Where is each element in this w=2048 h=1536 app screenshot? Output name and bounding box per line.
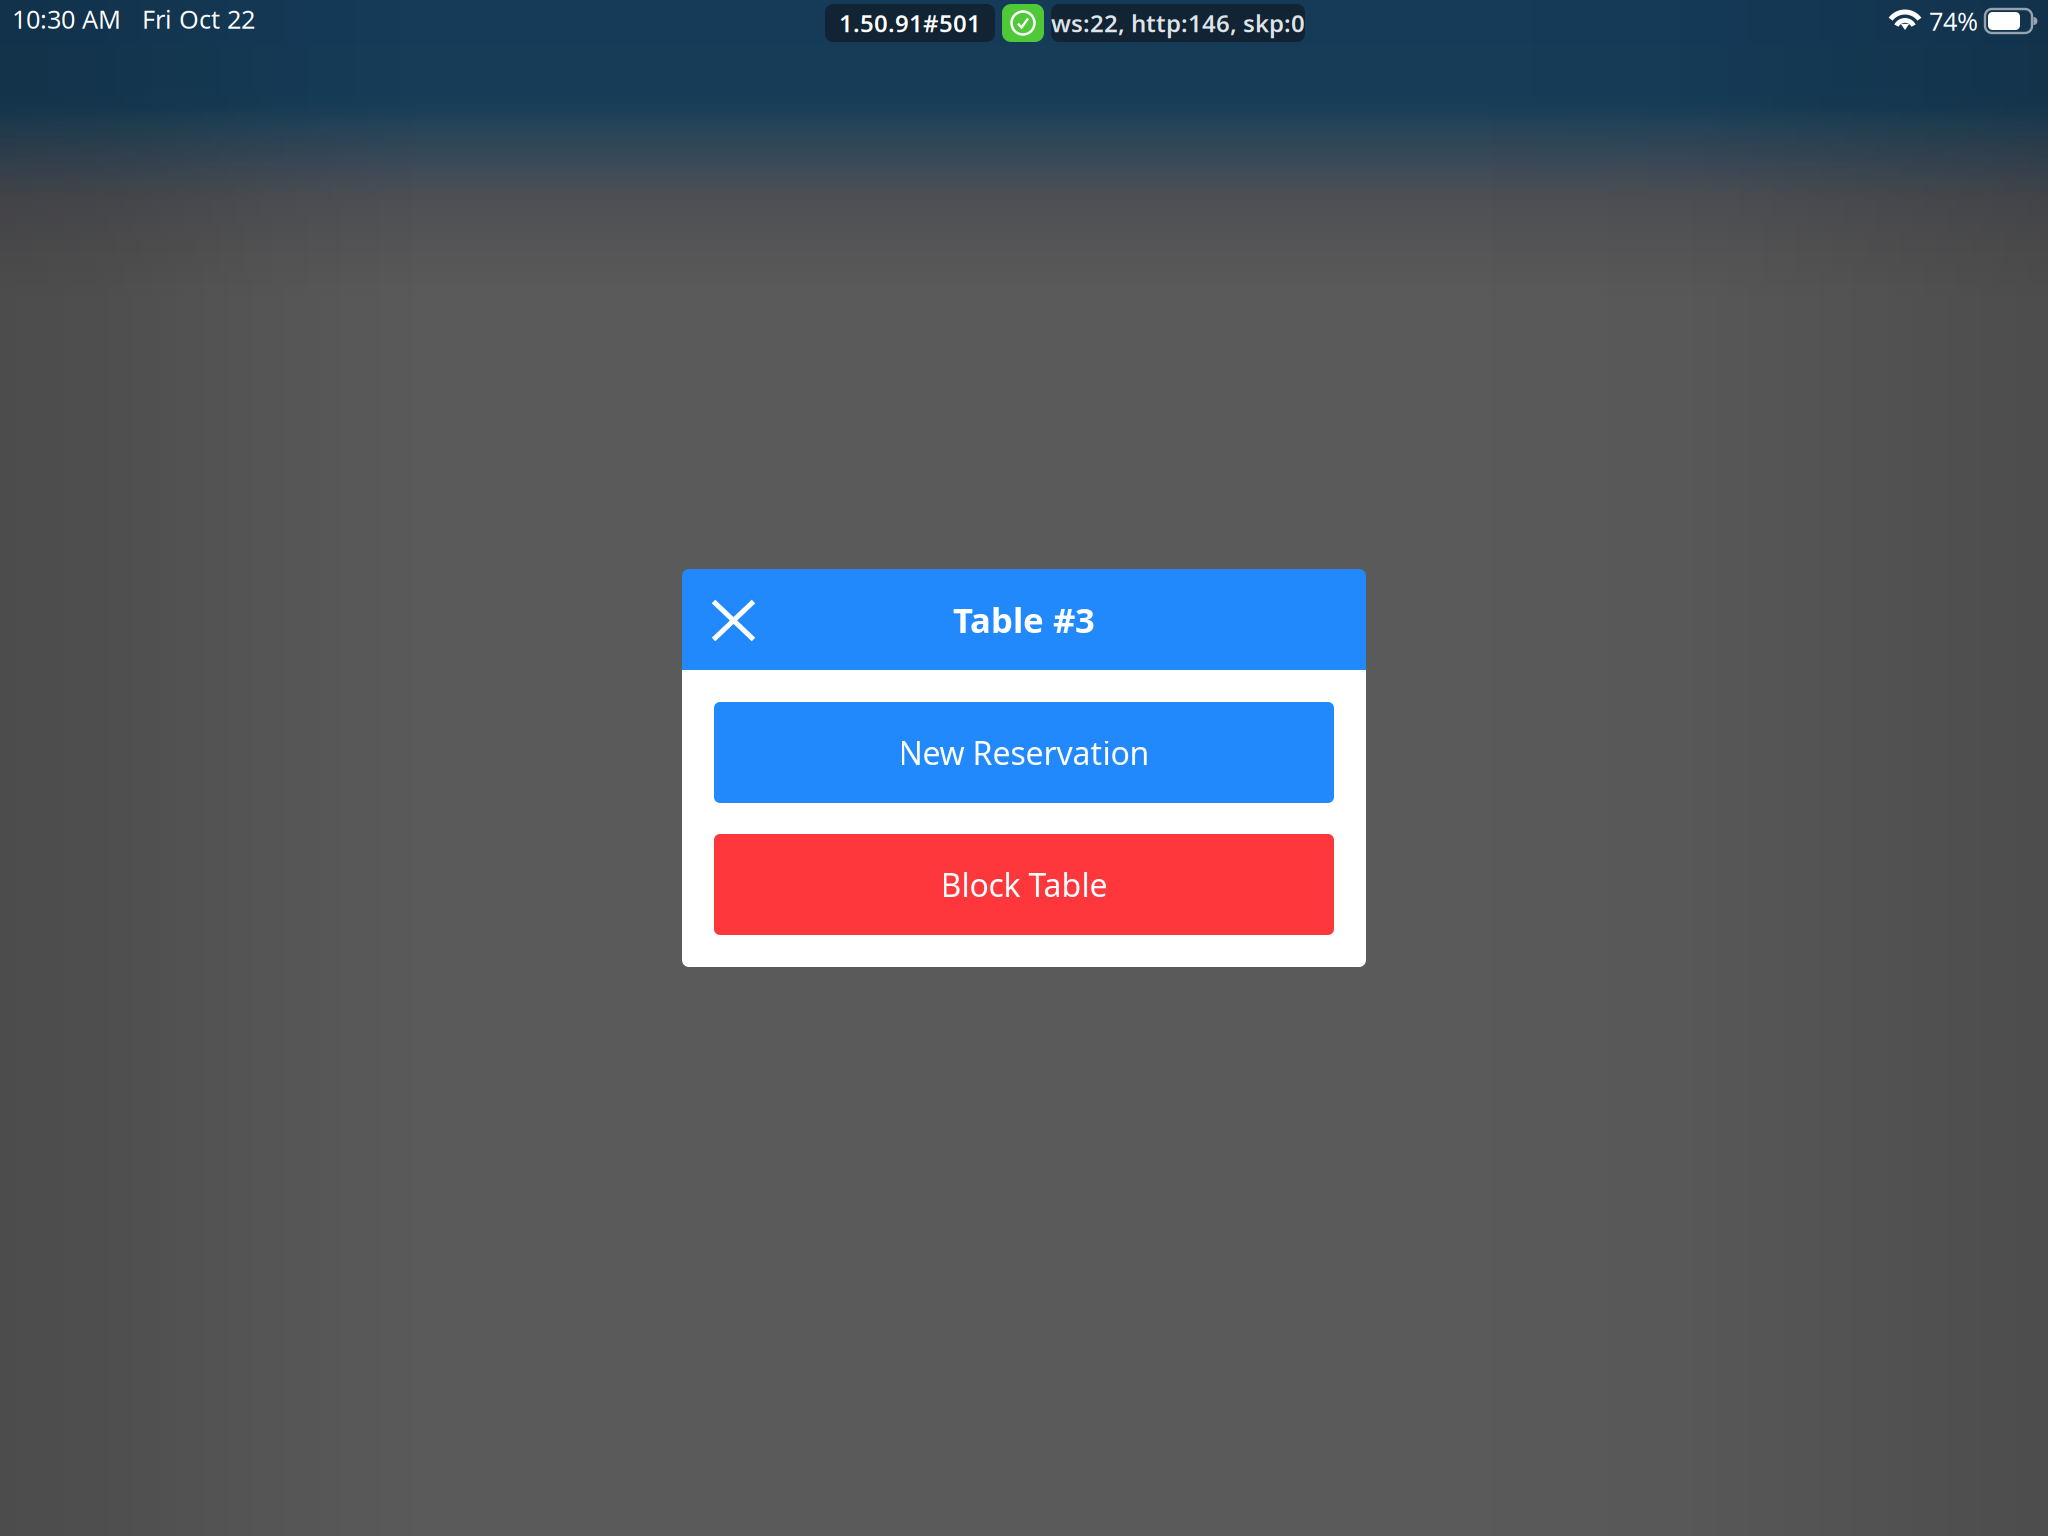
staticText: 10:30 AM bbox=[12, 2, 121, 36]
button[interactable]: New Reservation bbox=[714, 702, 1334, 803]
button[interactable]: Close bbox=[682, 569, 785, 669]
staticText: ws:22, http:146, skp:0 bbox=[1051, 7, 1305, 39]
staticText: 1.50.91#501 bbox=[839, 7, 981, 39]
staticText: Block Table bbox=[940, 863, 1107, 906]
staticText: Fri Oct 22 bbox=[142, 2, 255, 36]
staticText: Table #3 bbox=[953, 596, 1095, 642]
staticText: 74% bbox=[1929, 4, 1978, 38]
button[interactable]: Block Table bbox=[714, 834, 1334, 935]
staticText: New Reservation bbox=[898, 731, 1149, 774]
